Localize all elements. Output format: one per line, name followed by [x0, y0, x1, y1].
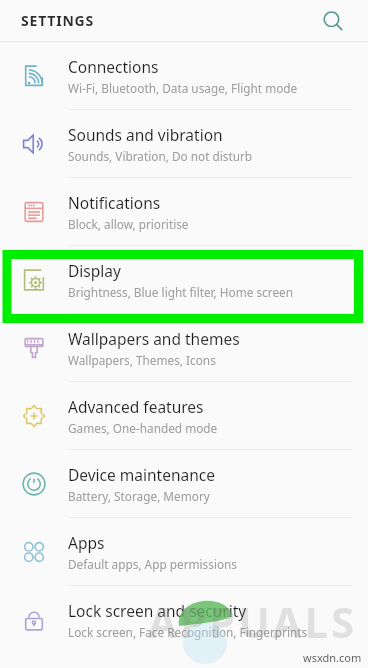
staticText: Games, One-handed mode — [68, 420, 218, 436]
button[interactable]: Lock screen and security — [0, 586, 368, 653]
staticText: Lock screen, Face Recognition, Fingerpri… — [68, 624, 308, 640]
button[interactable]: Connections — [0, 42, 368, 109]
staticText: Sounds, Vibration, Do not disturb — [68, 148, 253, 164]
staticText: Wallpapers and themes — [68, 328, 240, 349]
staticText: APPUALS — [148, 593, 358, 650]
staticText: Connections — [68, 56, 159, 77]
staticText: wsxdn.com — [303, 650, 362, 665]
button[interactable]: Search — [316, 4, 350, 38]
button[interactable]: Apps — [0, 518, 368, 585]
staticText: SETTINGS — [21, 11, 95, 30]
staticText: Sounds and vibration — [68, 124, 223, 145]
staticText: Battery, Storage, Memory — [68, 488, 210, 504]
staticText: Default apps, App permissions — [68, 556, 238, 572]
staticText: Advanced features — [68, 396, 204, 417]
staticText: Display — [68, 260, 121, 281]
staticText: Block, allow, prioritise — [68, 216, 189, 232]
button[interactable]: Sounds and vibration — [0, 110, 368, 177]
staticText: Lock screen and security — [68, 600, 247, 621]
staticText: Apps — [68, 532, 105, 553]
button[interactable]: Device maintenance — [0, 450, 368, 517]
button[interactable]: Advanced features — [0, 382, 368, 449]
button[interactable]: Wallpapers and themes — [0, 314, 368, 381]
staticText: Wi-Fi, Bluetooth, Data usage, Flight mod… — [68, 80, 298, 96]
staticText: Brightness, Blue light filter, Home scre… — [68, 284, 293, 300]
button[interactable]: Notifications — [0, 178, 368, 245]
button[interactable]: Display — [0, 246, 368, 313]
staticText: Device maintenance — [68, 464, 215, 485]
staticText: Notifications — [68, 192, 161, 213]
staticText: Wallpapers, Themes, Icons — [68, 352, 216, 368]
